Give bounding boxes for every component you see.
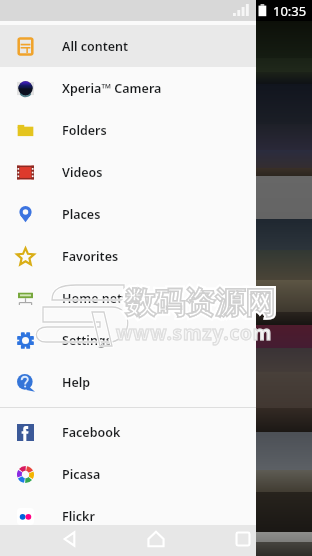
staticText: Help <box>62 374 91 391</box>
staticText: Picasa <box>62 466 101 483</box>
staticText: Favorites <box>62 248 119 265</box>
button[interactable]: Videos <box>0 151 256 193</box>
button[interactable]: Home network <box>0 277 256 319</box>
button[interactable]: Picasa <box>0 453 256 495</box>
staticText: 数码资源网 <box>125 284 275 322</box>
staticText: All content <box>62 38 129 55</box>
button[interactable]: Home <box>136 525 176 556</box>
staticText: Flickr <box>62 508 95 525</box>
staticText: Videos <box>62 164 103 181</box>
button[interactable]: Xperia™ Camera <box>0 67 256 109</box>
staticText: Home network <box>62 290 153 307</box>
staticText: Settings <box>62 332 112 349</box>
staticText: www.smzy.com <box>116 320 273 346</box>
button[interactable]: Recents <box>223 525 263 556</box>
button[interactable]: Facebook <box>0 411 256 453</box>
staticText: Places <box>62 206 101 223</box>
button[interactable]: Help <box>0 361 256 403</box>
staticText: 数码资源网 <box>125 284 275 322</box>
button[interactable]: Flickr <box>0 495 256 537</box>
staticText: Xperia™ Camera <box>62 80 162 97</box>
button[interactable]: Settings <box>0 319 256 361</box>
staticText: Folders <box>62 122 107 139</box>
button[interactable]: Back <box>50 525 90 556</box>
staticText: 10:35 <box>273 2 307 20</box>
button[interactable]: Favorites <box>0 235 256 277</box>
button[interactable]: Folders <box>0 109 256 151</box>
button[interactable]: Places <box>0 193 256 235</box>
staticText: Facebook <box>62 424 121 441</box>
button[interactable]: All content <box>0 25 256 67</box>
staticText: www.smzy.com <box>116 320 273 346</box>
